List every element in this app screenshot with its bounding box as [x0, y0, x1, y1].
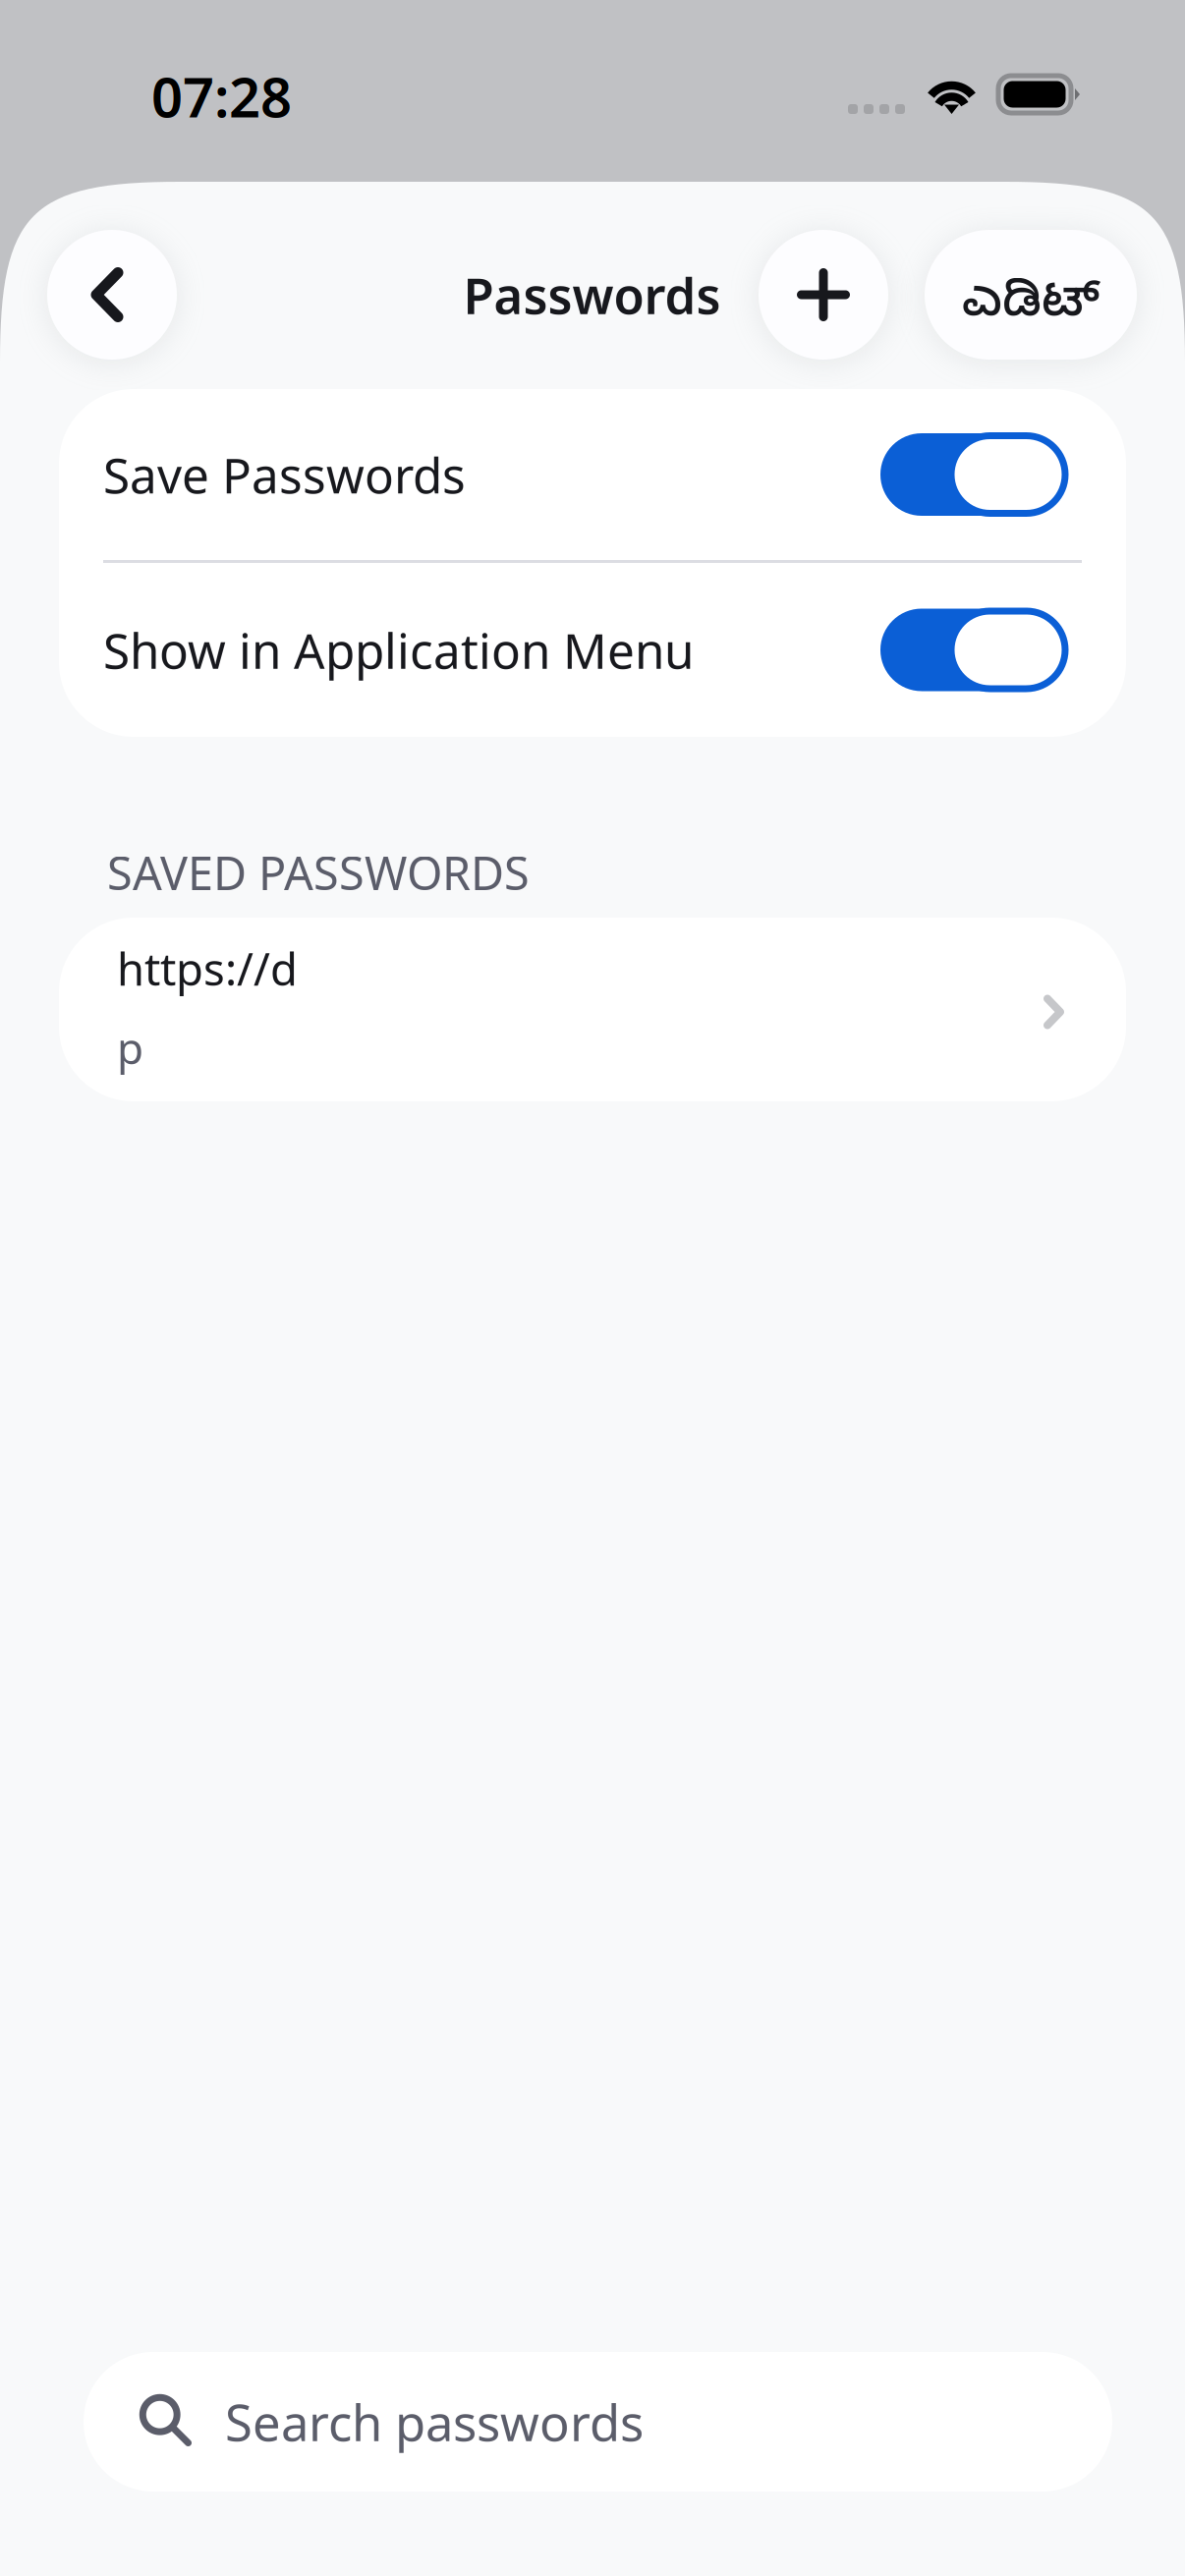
- button[interactable]: Search passwords: [84, 2352, 1112, 2492]
- staticText: 07:28: [151, 60, 292, 133]
- button[interactable]: Show in Application Menu: [59, 563, 1126, 737]
- staticText: Show in Application Menu: [103, 618, 694, 682]
- staticText: p: [117, 1019, 143, 1076]
- staticText: Search passwords: [225, 2389, 644, 2455]
- staticText: https://d: [117, 939, 298, 998]
- button[interactable]: https://d: [59, 918, 1126, 1101]
- staticText: Passwords: [463, 262, 721, 328]
- button[interactable]: Back: [47, 230, 177, 360]
- button[interactable]: ಎಡಿಟ್: [925, 230, 1137, 360]
- staticText: SAVED PASSWORDS: [107, 842, 530, 903]
- button[interactable]: Save Passwords: [59, 389, 1126, 560]
- button[interactable]: Add password: [759, 230, 888, 360]
- staticText: Save Passwords: [103, 442, 466, 507]
- staticText: ಎಡಿಟ್: [962, 276, 1100, 341]
